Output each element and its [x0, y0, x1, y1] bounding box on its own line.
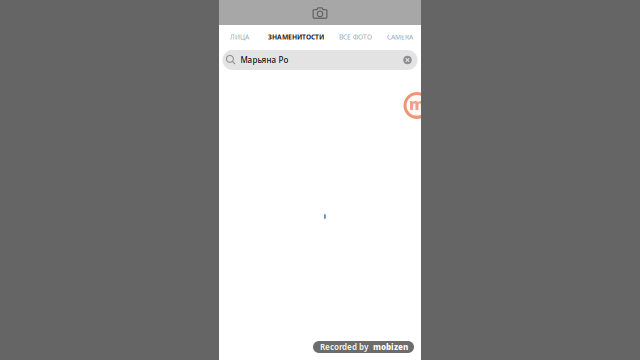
staticText: Марьяна Ро — [240, 55, 288, 65]
staticText: m — [409, 93, 425, 114]
staticText: ЗНАМЕНИТОСТИ — [268, 33, 324, 41]
button[interactable]: ЛИЦА — [230, 25, 249, 49]
staticText: mobizen — [373, 342, 408, 352]
staticText: ЛИЦА — [230, 33, 249, 41]
button[interactable]: Camera — [219, 0, 421, 25]
staticText: mobizen — [410, 114, 423, 118]
staticText: CAMERA — [387, 33, 413, 41]
staticText: Recorded by — [320, 342, 369, 352]
staticText: ВСЕ ФОТО — [339, 33, 372, 41]
button[interactable]: Clear search text — [400, 51, 414, 69]
button[interactable]: CAMERA — [387, 25, 413, 49]
button[interactable]: ВСЕ ФОТО — [339, 25, 372, 49]
button[interactable]: ЗНАМЕНИТОСТИ — [268, 25, 324, 49]
button[interactable]: Марьяна Ро — [222, 50, 417, 70]
